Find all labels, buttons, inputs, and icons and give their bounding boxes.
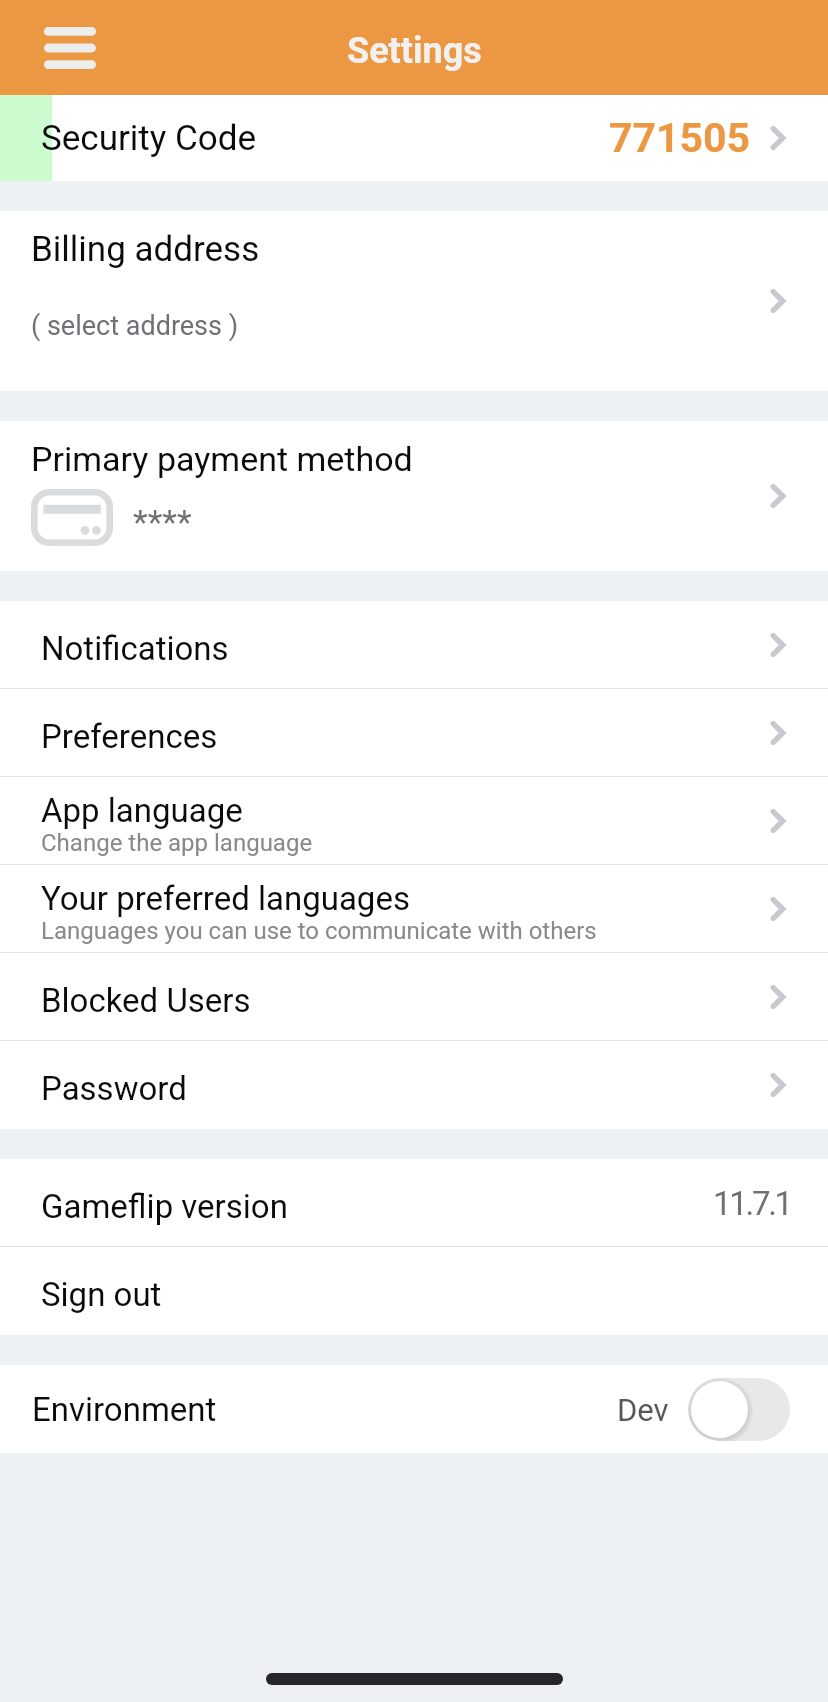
button[interactable]: Password xyxy=(0,1041,828,1129)
button[interactable]: Environment toggle xyxy=(688,1378,790,1441)
staticText: 771505 xyxy=(609,114,751,162)
button[interactable]: Your preferred languages xyxy=(0,865,828,953)
button[interactable]: App language xyxy=(0,777,828,865)
staticText: Notifications xyxy=(41,629,229,668)
staticText: Primary payment method xyxy=(31,439,413,479)
staticText: Password xyxy=(41,1069,187,1108)
staticText: Change the app language xyxy=(41,829,313,857)
button[interactable]: Security Code xyxy=(0,95,828,181)
button[interactable]: Menu xyxy=(30,12,110,84)
staticText: Preferences xyxy=(41,717,218,756)
button[interactable]: Environment xyxy=(0,1365,828,1453)
staticText: Sign out xyxy=(41,1275,162,1314)
button[interactable]: Billing address xyxy=(0,211,828,391)
button[interactable]: Preferences xyxy=(0,689,828,777)
staticText: Environment xyxy=(32,1390,217,1429)
staticText: ( select address ) xyxy=(31,310,239,342)
button[interactable]: Notifications xyxy=(0,601,828,689)
button[interactable]: Primary payment method xyxy=(0,421,828,571)
staticText: Gameflip version xyxy=(41,1187,288,1226)
staticText: **** xyxy=(133,502,192,542)
staticText: Dev xyxy=(617,1392,669,1428)
staticText: Billing address xyxy=(31,229,260,270)
staticText: Your preferred languages xyxy=(41,879,410,918)
staticText: App language xyxy=(41,791,243,830)
staticText: 11.7.1 xyxy=(713,1184,791,1223)
button[interactable]: Gameflip version xyxy=(0,1159,828,1247)
staticText: Settings xyxy=(347,30,482,72)
staticText: Blocked Users xyxy=(41,981,251,1020)
button[interactable]: Sign out xyxy=(0,1247,828,1335)
staticText: Languages you can use to communicate wit… xyxy=(41,917,597,945)
button[interactable]: Blocked Users xyxy=(0,953,828,1041)
staticText: Security Code xyxy=(41,118,257,159)
